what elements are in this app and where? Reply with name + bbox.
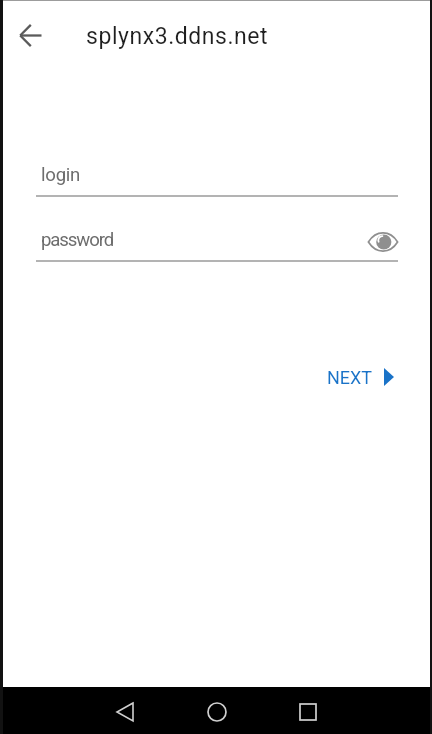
button[interactable]: Back [116, 702, 134, 722]
staticText: password [41, 229, 114, 251]
button[interactable]: password [36, 222, 398, 262]
staticText: login [41, 164, 81, 186]
button[interactable]: Recent apps [299, 703, 317, 721]
button[interactable]: Show password [365, 224, 401, 260]
staticText: NEXT [327, 367, 373, 388]
staticText: splynx3.ddns.net [86, 23, 269, 50]
button[interactable]: NEXT [318, 360, 400, 394]
button[interactable]: login [36, 157, 398, 197]
button[interactable]: Navigate back [7, 12, 54, 59]
button[interactable]: Home [207, 702, 227, 722]
